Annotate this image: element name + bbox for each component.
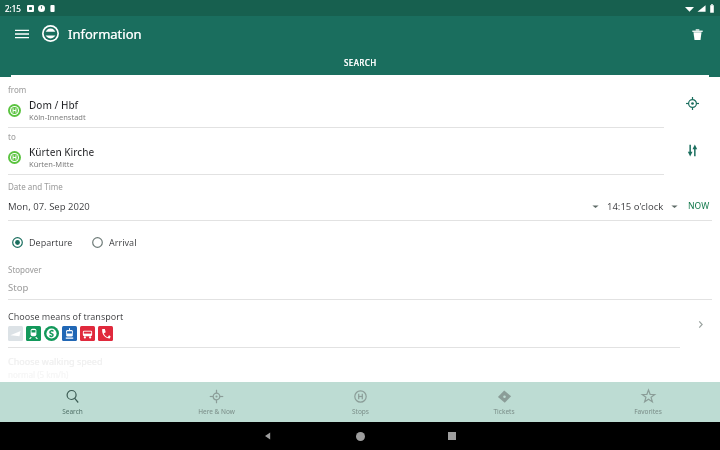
button[interactable]: PLANE bbox=[8, 326, 23, 341]
staticText: Choose means of transport bbox=[8, 310, 124, 322]
staticText: to bbox=[8, 131, 16, 142]
staticText: Köln-Innenstadt bbox=[29, 112, 86, 122]
button[interactable]: from bbox=[0, 81, 664, 128]
staticText: Kürten-Mitte bbox=[29, 159, 74, 169]
staticText: Choose walking speed bbox=[8, 355, 103, 367]
button[interactable]: Tickets bbox=[432, 382, 576, 422]
button[interactable]: BUS bbox=[80, 326, 95, 341]
staticText: Stopover bbox=[8, 264, 42, 275]
staticText: Stop bbox=[8, 281, 29, 294]
button[interactable]: SBAHN bbox=[44, 326, 59, 341]
button[interactable]: Here & Now bbox=[144, 382, 288, 422]
staticText: Favorites bbox=[634, 407, 662, 416]
other: Back bbox=[222, 431, 314, 441]
staticText: Arrival bbox=[109, 236, 137, 248]
staticText: NOW bbox=[688, 200, 710, 212]
button[interactable]: 14:15 o'clock bbox=[607, 200, 678, 213]
button[interactable]: NOW bbox=[678, 196, 720, 216]
button[interactable]: More transport options bbox=[680, 301, 720, 347]
button[interactable]: SEARCH bbox=[0, 51, 720, 77]
button[interactable]: Mon, 07. Sep 2020 bbox=[8, 200, 607, 213]
staticText: Here & Now bbox=[198, 407, 235, 416]
staticText: Tickets bbox=[493, 407, 515, 416]
button[interactable]: to bbox=[0, 128, 664, 175]
button[interactable]: Stops bbox=[288, 382, 432, 422]
other: Home bbox=[314, 432, 406, 441]
staticText: from bbox=[8, 84, 27, 95]
button[interactable]: Open navigation menu bbox=[9, 21, 35, 47]
staticText: Stops bbox=[352, 407, 369, 416]
staticText: Kürten Kirche bbox=[29, 145, 95, 159]
staticText: 2:15 bbox=[5, 3, 21, 14]
button[interactable]: Choose means of transport bbox=[0, 300, 680, 348]
staticText: 14:15 o'clock bbox=[607, 200, 664, 213]
button[interactable]: Stop bbox=[8, 281, 720, 294]
button[interactable]: Search bbox=[0, 382, 144, 422]
button[interactable]: Swap origin and destination bbox=[664, 128, 720, 172]
button[interactable]: Arrival bbox=[90, 233, 139, 251]
button[interactable]: PHONE bbox=[98, 326, 113, 341]
staticText: Dom / Hbf bbox=[29, 98, 79, 112]
button[interactable]: Departure bbox=[10, 233, 75, 251]
button[interactable]: TRAM bbox=[62, 326, 77, 341]
staticText: Information bbox=[68, 25, 142, 43]
other: Recents bbox=[406, 432, 498, 440]
button[interactable]: Use current location bbox=[664, 81, 720, 125]
button[interactable]: TRAIN bbox=[26, 326, 41, 341]
button[interactable]: Clear bbox=[683, 20, 711, 48]
staticText: Mon, 07. Sep 2020 bbox=[8, 200, 90, 213]
button[interactable]: Favorites bbox=[576, 382, 720, 422]
staticText: Departure bbox=[29, 236, 73, 248]
staticText: Search bbox=[62, 407, 83, 416]
staticText: Date and Time bbox=[8, 181, 63, 192]
staticText: SEARCH bbox=[344, 57, 377, 68]
staticText: normal (5 km/h) bbox=[8, 369, 69, 380]
